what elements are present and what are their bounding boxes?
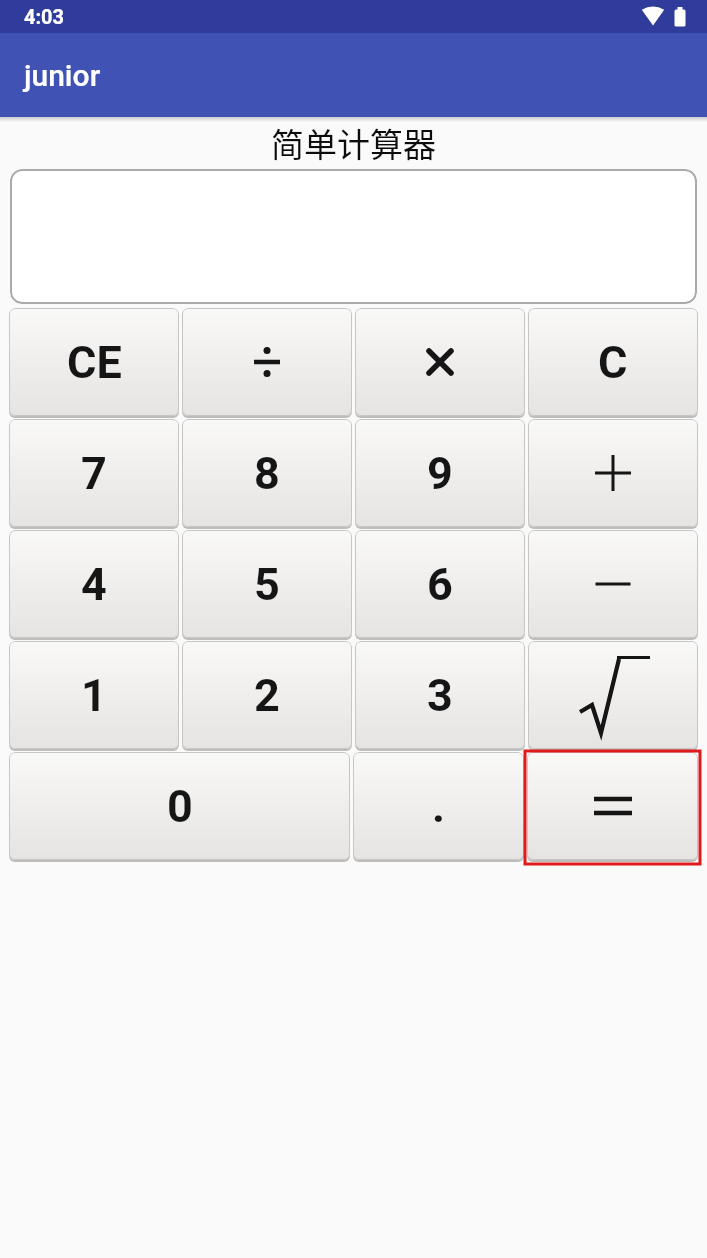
button[interactable] (528, 419, 698, 527)
staticText: 0 (167, 780, 193, 833)
button[interactable] (527, 752, 698, 860)
button[interactable] (182, 308, 352, 416)
staticText: 4 (81, 558, 107, 611)
button[interactable]: CE (9, 308, 179, 416)
button[interactable]: 1 (9, 641, 179, 749)
button[interactable] (528, 641, 698, 749)
button[interactable]: C (528, 308, 698, 416)
staticText: 简单计算器 (271, 119, 436, 167)
button[interactable]: . (353, 752, 524, 860)
button[interactable]: 3 (355, 641, 525, 749)
button[interactable] (10, 169, 697, 304)
staticText: 2 (254, 669, 280, 722)
staticText: 8 (254, 447, 280, 500)
staticText: junior (24, 58, 101, 93)
staticText: . (432, 780, 446, 833)
button[interactable] (528, 530, 698, 638)
staticText: 5 (254, 558, 280, 611)
staticText: 6 (427, 558, 453, 611)
staticText: 4:03 (24, 5, 65, 28)
button[interactable] (355, 308, 525, 416)
button[interactable]: 8 (182, 419, 352, 527)
button[interactable]: 7 (9, 419, 179, 527)
button[interactable]: 5 (182, 530, 352, 638)
button[interactable]: 0 (9, 752, 350, 860)
button[interactable]: 6 (355, 530, 525, 638)
staticText: CE (67, 336, 122, 389)
staticText: C (598, 336, 628, 389)
staticText: 1 (81, 669, 107, 722)
staticText: 3 (427, 669, 453, 722)
button[interactable]: 2 (182, 641, 352, 749)
staticText: 9 (427, 447, 453, 500)
staticText: 7 (81, 447, 107, 500)
button[interactable]: 4 (9, 530, 179, 638)
button[interactable]: 9 (355, 419, 525, 527)
